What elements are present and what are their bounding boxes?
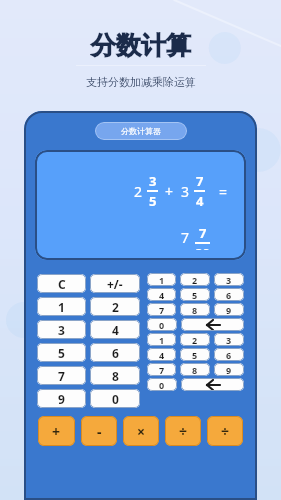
staticText: 9 <box>226 304 232 316</box>
staticText: 6 <box>226 289 232 301</box>
staticText: 7 <box>196 172 204 190</box>
staticText: ÷ <box>221 422 230 441</box>
staticText: 3 <box>226 274 232 286</box>
staticText: 5 <box>149 192 157 210</box>
staticText: 3 <box>181 182 190 201</box>
staticText: + <box>165 182 174 201</box>
button[interactable]: - <box>81 416 117 446</box>
button[interactable]: Backspace <box>181 378 244 391</box>
button[interactable]: 2 <box>180 273 210 286</box>
staticText: 2 <box>192 274 198 286</box>
staticText: 1 <box>159 334 165 346</box>
button[interactable]: 分数计算器 <box>95 122 187 140</box>
button[interactable]: 5 <box>180 288 210 301</box>
staticText: 8 <box>112 368 119 384</box>
staticText: 7 <box>58 368 65 384</box>
button[interactable]: 4 <box>147 288 176 301</box>
staticText: 0 <box>159 379 165 391</box>
button[interactable]: 1 <box>147 273 176 286</box>
staticText: 8 <box>192 304 198 316</box>
staticText: 7 <box>199 224 207 242</box>
staticText: 3 <box>226 334 232 346</box>
staticText: +/- <box>107 276 123 292</box>
staticText: 9 <box>226 364 232 376</box>
button[interactable]: 8 <box>180 303 210 316</box>
staticText: 6 <box>226 349 232 361</box>
staticText: 9 <box>58 391 65 407</box>
button[interactable]: 6 <box>90 343 140 362</box>
staticText: 0 <box>112 391 119 407</box>
staticText: 2 <box>134 182 143 201</box>
staticText: 2 <box>112 299 119 315</box>
button[interactable]: 2 <box>180 333 210 346</box>
button[interactable]: 7 <box>147 303 176 316</box>
staticText: 5 <box>192 289 198 301</box>
button[interactable]: 4 <box>147 348 176 361</box>
button[interactable]: 7 <box>37 366 86 385</box>
button[interactable]: 2 <box>35 150 246 260</box>
staticText: = <box>219 182 228 201</box>
staticText: × <box>137 422 146 441</box>
staticText: 分数计算器 <box>121 126 161 136</box>
staticText: 4 <box>159 289 165 301</box>
staticText: 4 <box>112 322 119 338</box>
button[interactable]: 3 <box>37 320 86 339</box>
button[interactable]: 6 <box>214 348 244 361</box>
button[interactable]: 1 <box>147 333 176 346</box>
staticText: 3 <box>149 172 157 190</box>
staticText: 5 <box>192 349 198 361</box>
staticText: 分数计算 <box>91 30 191 61</box>
staticText: 7 <box>159 304 165 316</box>
staticText: 支持分数加减乘除运算 <box>86 75 196 89</box>
button[interactable]: 8 <box>90 366 140 385</box>
button[interactable]: 0 <box>147 318 177 331</box>
button[interactable]: 4 <box>90 320 140 339</box>
staticText: 4 <box>196 192 204 210</box>
staticText: 8 <box>192 364 198 376</box>
button[interactable]: 9 <box>214 303 244 316</box>
staticText: ÷ <box>179 422 188 441</box>
button[interactable]: 5 <box>37 343 86 362</box>
button[interactable]: 7 <box>147 363 176 376</box>
button[interactable]: 5 <box>180 348 210 361</box>
staticText: C <box>58 276 66 292</box>
staticText: 3 <box>58 322 65 338</box>
button[interactable]: 3 <box>214 333 244 346</box>
staticText: 1 <box>159 274 165 286</box>
button[interactable]: Backspace <box>181 318 244 331</box>
staticText: - <box>97 422 102 441</box>
staticText: 7 <box>181 228 190 247</box>
button[interactable]: 6 <box>214 288 244 301</box>
button[interactable]: + <box>38 416 75 446</box>
staticText: 0 <box>159 319 165 331</box>
button[interactable]: C <box>37 274 86 293</box>
staticText: 20 <box>195 244 210 250</box>
button[interactable]: 9 <box>37 389 86 408</box>
button[interactable]: 1 <box>37 297 86 316</box>
button[interactable]: 0 <box>147 378 177 391</box>
staticText: 1 <box>58 299 65 315</box>
staticText: 7 <box>159 364 165 376</box>
button[interactable]: 9 <box>214 363 244 376</box>
staticText: 2 <box>192 334 198 346</box>
staticText: 6 <box>112 345 119 361</box>
button[interactable]: 0 <box>90 389 140 408</box>
button[interactable]: ÷ <box>207 416 243 446</box>
button[interactable]: +/- <box>90 274 140 293</box>
staticText: 5 <box>58 345 65 361</box>
button[interactable]: 8 <box>180 363 210 376</box>
button[interactable]: ÷ <box>165 416 201 446</box>
staticText: + <box>52 422 61 441</box>
button[interactable]: 2 <box>90 297 140 316</box>
button[interactable]: × <box>123 416 159 446</box>
staticText: 4 <box>159 349 165 361</box>
button[interactable]: 3 <box>214 273 244 286</box>
